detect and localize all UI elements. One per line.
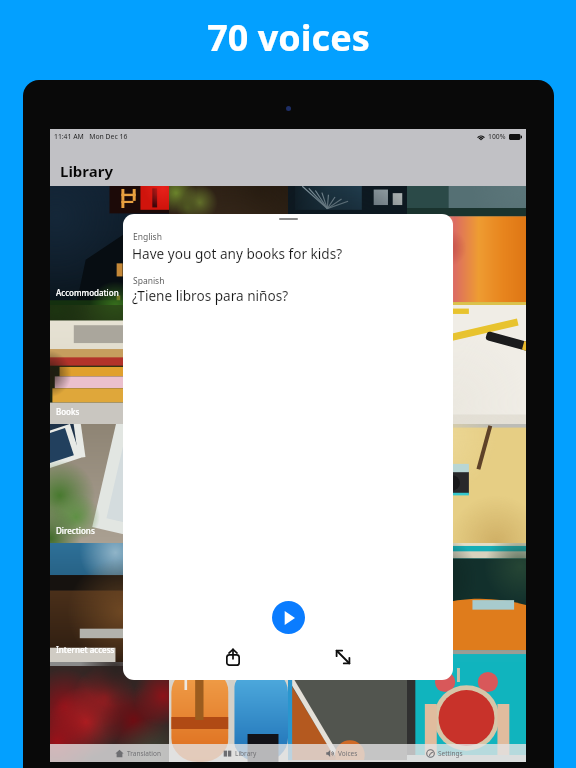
button[interactable] — [50, 662, 169, 762]
button[interactable]: Expand — [331, 645, 355, 669]
button[interactable] — [169, 543, 288, 662]
staticText: 11:41 AM Mon Dec 16 — [54, 132, 128, 141]
staticText: Accommodation — [56, 287, 119, 298]
button[interactable]: Internet access — [50, 543, 169, 662]
button[interactable] — [288, 543, 407, 662]
button[interactable]: Books — [50, 305, 169, 424]
button[interactable] — [169, 662, 288, 762]
button[interactable]: Library — [189, 744, 291, 762]
staticText: 100% — [488, 132, 506, 141]
staticText: English — [133, 231, 162, 243]
button[interactable] — [169, 186, 288, 305]
button[interactable]: car — [407, 543, 526, 662]
button[interactable]: Share — [221, 645, 245, 669]
staticText: Library — [235, 749, 257, 758]
staticText: ¿Tiene libros para niños? — [132, 286, 289, 305]
button[interactable]: Translation — [87, 744, 189, 762]
staticText: Spanish — [133, 275, 165, 287]
staticText: Directions — [56, 525, 95, 536]
button[interactable]: Voices — [291, 744, 393, 762]
button[interactable]: Accommodation — [50, 186, 169, 305]
button[interactable] — [288, 662, 407, 762]
button[interactable]: Directions — [50, 424, 169, 543]
button[interactable] — [407, 424, 526, 543]
button[interactable]: days — [407, 305, 526, 424]
staticText: Internet access — [56, 644, 115, 655]
button[interactable]: Play — [272, 601, 305, 634]
button[interactable] — [407, 186, 526, 305]
staticText: Library — [60, 161, 114, 181]
button[interactable] — [288, 186, 407, 305]
staticText: Translation — [127, 749, 161, 758]
staticText: Have you got any books for kids? — [132, 244, 343, 263]
staticText: Books — [56, 406, 80, 417]
button[interactable] — [407, 662, 526, 762]
staticText: Settings — [438, 749, 463, 758]
staticText: Voices — [338, 749, 358, 758]
button[interactable]: Settings — [393, 744, 495, 762]
staticText: 70 voices — [207, 13, 370, 62]
